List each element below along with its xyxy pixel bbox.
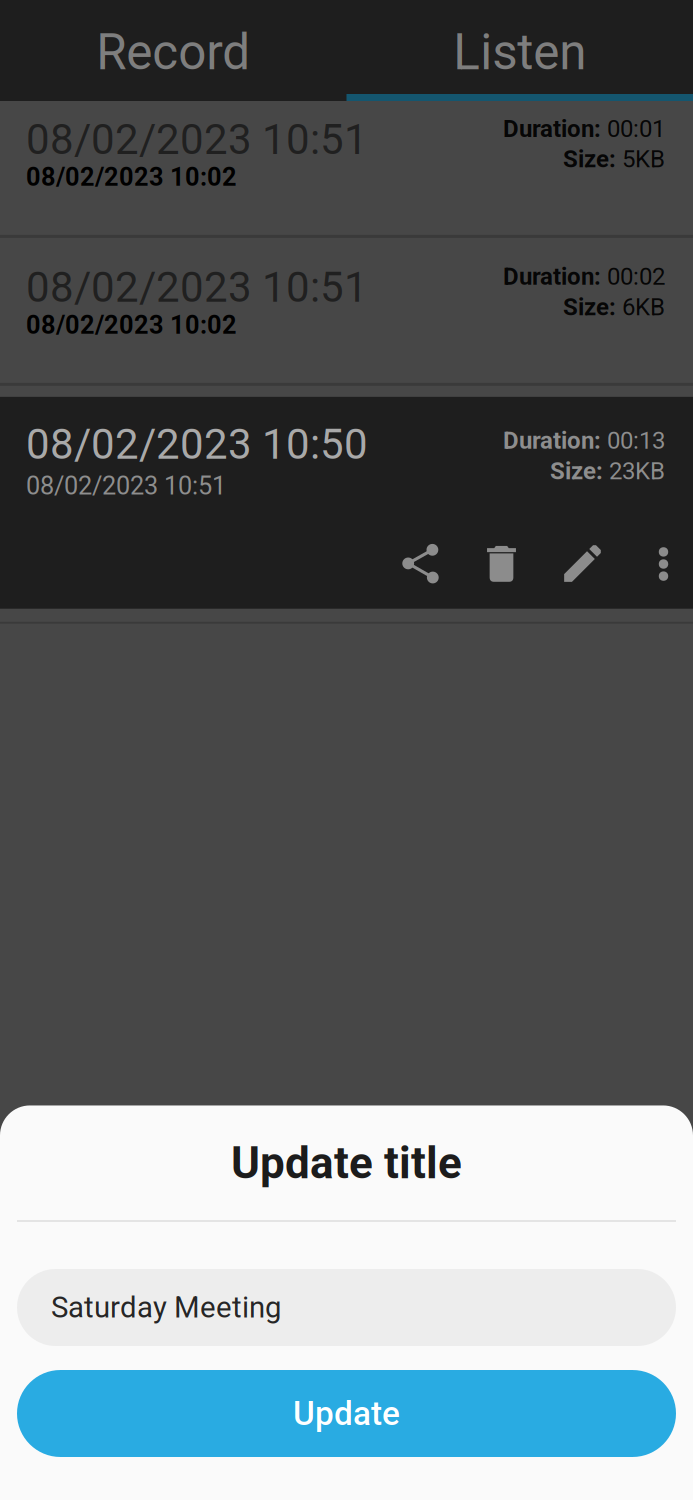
staticText: 08/02/2023 10:50 xyxy=(26,420,368,469)
staticText: Listen xyxy=(453,24,586,81)
button[interactable]: 08/02/2023 10:51 xyxy=(0,101,693,235)
button[interactable]: Record xyxy=(0,0,346,101)
staticText: Duration: 00:01 xyxy=(503,115,665,142)
button[interactable]: Update xyxy=(0,1370,693,1457)
button[interactable]: 08/02/2023 10:50 xyxy=(0,397,693,609)
staticText: Saturday Meeting xyxy=(51,1290,281,1325)
staticText: 08/02/2023 10:02 xyxy=(26,162,237,192)
staticText: 08/02/2023 10:02 xyxy=(26,310,237,340)
button[interactable]: Share xyxy=(380,543,461,585)
staticText: Update xyxy=(293,1394,400,1433)
staticText: 08/02/2023 10:51 xyxy=(26,263,368,312)
button[interactable]: 08/02/2023 10:51 xyxy=(0,238,693,383)
button[interactable]: Rename xyxy=(542,543,623,585)
staticText: 08/02/2023 10:51 xyxy=(26,471,226,501)
staticText: Duration: 00:02 xyxy=(503,263,665,290)
staticText: Update title xyxy=(231,1137,462,1189)
staticText: Record xyxy=(96,24,250,81)
button[interactable]: More options xyxy=(623,543,693,585)
staticText: Size: 6KB xyxy=(563,293,665,321)
staticText: Size: 5KB xyxy=(563,145,665,173)
staticText: 08/02/2023 10:51 xyxy=(26,115,368,164)
staticText: Duration: 00:13 xyxy=(503,427,665,454)
staticText: Size: 23KB xyxy=(550,457,665,485)
button[interactable]: Listen xyxy=(346,0,693,101)
button[interactable]: Delete xyxy=(461,543,542,585)
